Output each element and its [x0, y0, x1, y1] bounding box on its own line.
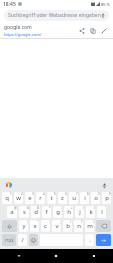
button[interactable]: l: [97, 206, 106, 218]
staticText: v: [55, 222, 59, 230]
staticText: y: [22, 222, 26, 230]
staticText: n: [77, 222, 81, 230]
staticText: a: [10, 208, 14, 216]
staticText: ?: [81, 220, 83, 224]
staticText: 4: [43, 192, 45, 196]
button[interactable]: d: [31, 206, 40, 218]
staticText: t: [50, 194, 53, 202]
button[interactable]: m: [85, 220, 94, 232]
button[interactable]: n: [74, 220, 83, 232]
staticText: e: [28, 194, 32, 202]
staticText: q: [5, 194, 9, 202]
staticText: !: [93, 220, 94, 224]
staticText: w: [16, 194, 21, 202]
staticText: 7: [76, 192, 78, 196]
staticText: 6: [65, 192, 67, 196]
staticText: -: [61, 206, 62, 210]
staticText: !: [27, 220, 28, 224]
staticText: :: [49, 220, 50, 224]
button[interactable]: u: [69, 192, 78, 204]
button[interactable]: o: [91, 192, 100, 204]
staticText: 9: [98, 192, 100, 196]
staticText: +: [71, 206, 73, 210]
staticText: Suchbegriff oder Webadresse eingeben: [8, 12, 101, 19]
button[interactable]: g: [53, 206, 62, 218]
button[interactable]: z: [58, 192, 67, 204]
staticText: j: [79, 208, 81, 216]
staticText: c: [44, 222, 47, 230]
button[interactable]: k: [86, 206, 95, 218]
button[interactable]: Copy: [87, 25, 98, 36]
staticText: ;: [60, 220, 61, 224]
button[interactable]: Recents: [75, 249, 113, 263]
button[interactable]: Go: [96, 234, 111, 246]
staticText: d: [34, 208, 38, 216]
staticText: b: [66, 222, 70, 230]
button[interactable]: .: [85, 234, 94, 246]
button[interactable]: r: [36, 192, 45, 204]
staticText: ': [105, 206, 106, 210]
button[interactable]: google.com: [0, 23, 113, 38]
staticText: p: [105, 194, 109, 202]
staticText: o: [94, 194, 98, 202]
staticText: ?123: [5, 238, 14, 243]
button[interactable]: Voice search: [101, 11, 105, 20]
button[interactable]: Google: [4, 180, 14, 190]
staticText: 5: [54, 192, 56, 196]
button[interactable]: a: [7, 206, 17, 218]
button[interactable]: j: [75, 206, 84, 218]
staticText: ): [94, 206, 95, 210]
button[interactable]: Back: [0, 249, 37, 263]
staticText: u: [72, 194, 76, 202]
button[interactable]: h: [64, 206, 73, 218]
button[interactable]: Share: [76, 25, 87, 36]
button[interactable]: Shift: [2, 220, 17, 232]
button[interactable]: /: [18, 234, 27, 246]
button[interactable]: Voice input: [99, 180, 109, 190]
staticText: (: [83, 206, 84, 210]
staticText: f: [45, 208, 48, 216]
button[interactable]: Home: [37, 249, 75, 263]
button[interactable]: c: [41, 220, 50, 232]
staticText: .: [89, 236, 91, 244]
staticText: z: [61, 194, 64, 202]
staticText: k: [89, 208, 93, 216]
button[interactable]: x: [30, 220, 39, 232]
button[interactable]: Edit: [98, 25, 109, 36]
button[interactable]: s: [19, 206, 29, 218]
staticText: g: [56, 208, 60, 216]
staticText: 1: [10, 192, 12, 196]
button[interactable]: Backspace: [96, 220, 111, 232]
button[interactable]: v: [52, 220, 61, 232]
button[interactable]: t: [47, 192, 56, 204]
staticText: i: [84, 194, 86, 202]
button[interactable]: e: [25, 192, 34, 204]
button[interactable]: f: [42, 206, 51, 218]
staticText: *: [49, 206, 51, 210]
staticText: 86 %: [101, 2, 110, 7]
staticText: 8: [87, 192, 89, 196]
button[interactable]: p: [102, 192, 111, 204]
staticText: /: [21, 236, 24, 244]
button[interactable]: q: [2, 192, 12, 204]
button[interactable]: ?123: [2, 234, 16, 246]
staticText: @: [14, 206, 17, 210]
staticText: 2: [21, 192, 23, 196]
staticText: x: [33, 222, 37, 230]
staticText: 0: [109, 192, 111, 196]
staticText: s: [23, 208, 26, 216]
staticText: l: [101, 208, 103, 216]
staticText: &: [37, 206, 40, 210]
button[interactable]: Emoji: [29, 234, 38, 246]
button[interactable]: Suchbegriff oder Webadresse eingeben: [4, 10, 109, 21]
button[interactable]: b: [63, 220, 72, 232]
staticText: 3: [32, 192, 34, 196]
button[interactable]: w: [14, 192, 23, 204]
button[interactable]: y: [19, 220, 28, 232]
staticText: h: [67, 208, 71, 216]
staticText: m: [87, 222, 93, 230]
staticText: #: [27, 206, 29, 210]
staticText: google.com: [4, 24, 32, 31]
button[interactable]: i: [80, 192, 89, 204]
